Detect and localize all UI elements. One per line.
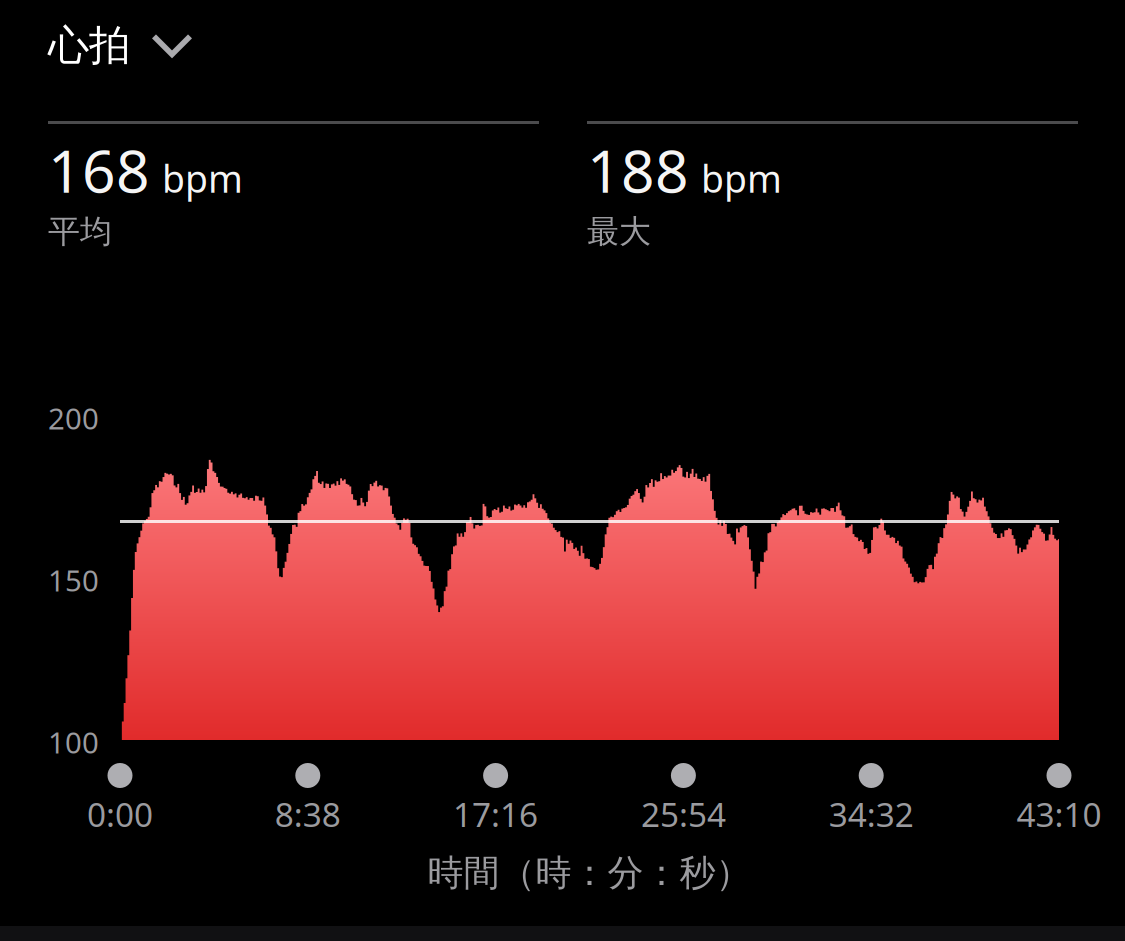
staticText: 最大 (587, 212, 651, 251)
staticText: 34:32 (829, 792, 914, 836)
staticText: 時間（時：分：秒） (427, 851, 751, 895)
staticText: 168 (48, 131, 150, 209)
staticText: 200 (48, 398, 99, 437)
staticText: 0:00 (87, 792, 153, 836)
staticText: 17:16 (453, 792, 538, 836)
button[interactable]: 心拍 (48, 20, 204, 71)
staticText: 8:38 (275, 792, 341, 836)
staticText: 平均 (48, 212, 112, 251)
staticText: 100 (48, 722, 99, 761)
staticText: 心拍 (48, 20, 130, 71)
staticText: bpm (701, 153, 782, 203)
staticText: bpm (162, 153, 243, 203)
staticText: 43:10 (1016, 792, 1101, 836)
staticText: 25:54 (641, 792, 726, 836)
staticText: 150 (48, 560, 99, 599)
staticText: 188 (587, 131, 689, 209)
